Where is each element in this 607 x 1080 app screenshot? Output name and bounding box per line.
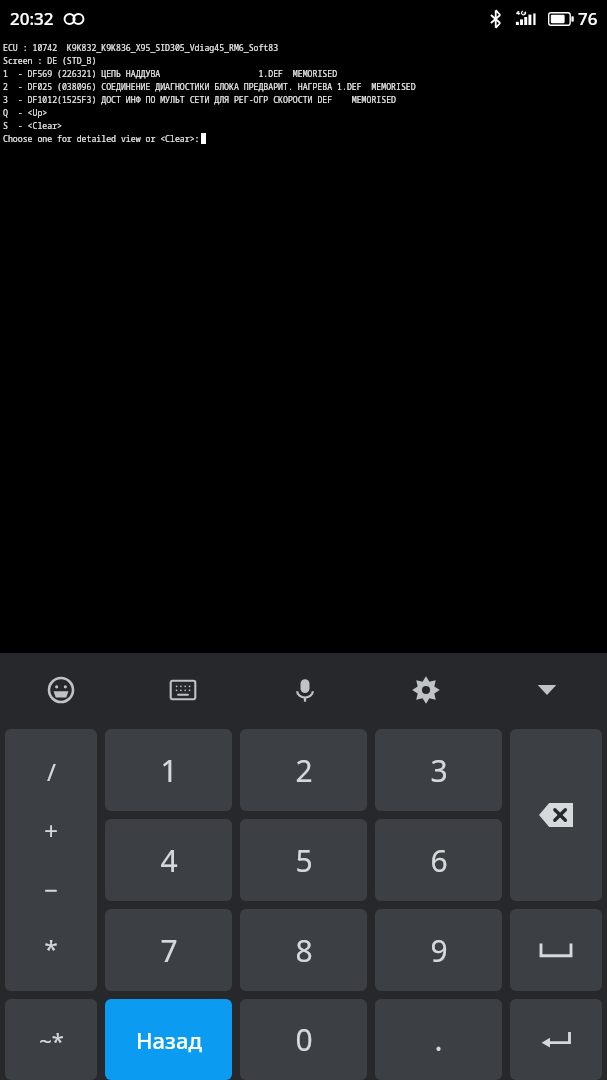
staticText: ECU : 10742 K9K832_K9K836_X95_SID305_Vdi… xyxy=(3,42,279,53)
staticText: 2 xyxy=(295,750,313,791)
staticText: 3 - DF1012(1525F3) ДОСТ ИНФ ПО МУЛЬТ СЕТ… xyxy=(3,94,397,105)
button[interactable]: Backspace xyxy=(510,729,602,901)
button[interactable]: Emoji xyxy=(0,653,122,726)
button[interactable]: Назад xyxy=(105,999,232,1080)
staticText: 1 - DF569 (226321) ЦЕПЬ НАДДУВА 1.DEF ME… xyxy=(3,68,338,79)
button[interactable]: Voice input xyxy=(244,653,365,726)
button[interactable]: 2 xyxy=(240,729,367,811)
button[interactable]: ~* xyxy=(5,999,97,1080)
button[interactable]: Enter xyxy=(510,999,602,1080)
button[interactable]: 4 xyxy=(105,819,232,901)
staticText: 5 xyxy=(295,840,313,881)
button[interactable]: Hide keyboard xyxy=(486,653,607,726)
staticText: 2 - DF025 (038096) СОЕДИНЕНИЕ ДИАГНОСТИК… xyxy=(3,81,416,92)
staticText: Q - <Up> xyxy=(3,107,48,118)
button[interactable]: Space xyxy=(510,909,602,991)
button[interactable]: 3 xyxy=(375,729,502,811)
staticText: 8 xyxy=(295,930,313,971)
staticText: Choose one for detailed view or <Clear>: xyxy=(3,133,200,144)
button[interactable]: 0 xyxy=(240,999,367,1080)
button[interactable]: 1 xyxy=(105,729,232,811)
staticText: 9 xyxy=(430,930,448,971)
button[interactable]: Keyboard layout xyxy=(122,653,244,726)
staticText: 1 xyxy=(160,750,178,791)
staticText: 20:32 xyxy=(10,7,54,30)
staticText: + xyxy=(44,814,58,847)
staticText: 3 xyxy=(430,750,448,791)
button[interactable]: 7 xyxy=(105,909,232,991)
staticText: S - <Clear> xyxy=(3,120,62,131)
staticText: 76 xyxy=(578,7,598,30)
button[interactable]: Settings xyxy=(365,653,486,726)
staticText: Screen : DE (STD_B) xyxy=(3,55,97,66)
staticText: 6 xyxy=(430,840,448,881)
staticText: . xyxy=(434,1019,443,1060)
staticText: ~* xyxy=(39,1025,64,1055)
staticText: / xyxy=(47,755,56,788)
button[interactable]: . xyxy=(375,999,502,1080)
button[interactable]: 8 xyxy=(240,909,367,991)
button[interactable]: 9 xyxy=(375,909,502,991)
staticText: Назад xyxy=(136,1025,202,1055)
button[interactable]: 6 xyxy=(375,819,502,901)
staticText: 0 xyxy=(295,1019,313,1060)
staticText: 7 xyxy=(160,930,178,971)
staticText: − xyxy=(44,873,58,906)
button[interactable]: 5 xyxy=(240,819,367,901)
staticText: * xyxy=(44,932,58,965)
staticText: 4 xyxy=(160,840,178,881)
button[interactable]: / xyxy=(5,729,97,991)
